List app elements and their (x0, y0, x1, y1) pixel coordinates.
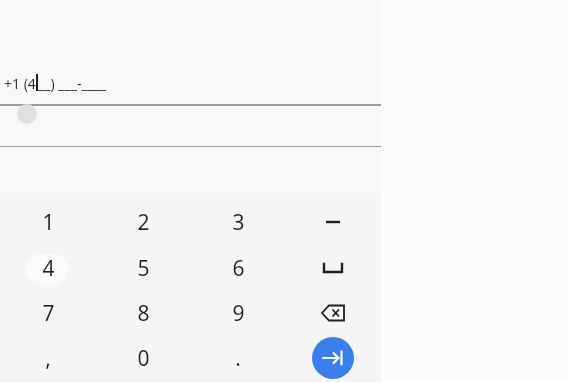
staticText: 1 (42, 208, 55, 237)
button[interactable]: 7 (1, 290, 95, 336)
staticText: 0 (137, 344, 150, 373)
button[interactable]: . (191, 335, 285, 381)
staticText: 6 (232, 254, 245, 283)
button[interactable]: 6 (191, 245, 285, 291)
staticText: 8 (137, 299, 150, 328)
button[interactable]: 9 (191, 290, 285, 336)
staticText: +1 (4 (4, 74, 36, 93)
button[interactable]: Backspace (286, 290, 380, 336)
button[interactable]: 5 (96, 245, 190, 291)
button[interactable]: 8 (96, 290, 190, 336)
button[interactable]: 4 (1, 245, 95, 291)
button[interactable]: Next (312, 337, 354, 379)
staticText: , (45, 344, 51, 373)
staticText: 5 (137, 254, 150, 283)
button[interactable]: , (1, 335, 95, 381)
button[interactable]: +1 (4 (0, 65, 381, 105)
staticText: 2 (137, 208, 150, 237)
button[interactable]: 0 (96, 335, 190, 381)
staticText: 4 (42, 254, 55, 283)
staticText: __) ___-____ (38, 74, 107, 93)
staticText: 9 (232, 299, 245, 328)
button[interactable]: Space (286, 245, 380, 291)
button[interactable]: 3 (191, 199, 285, 245)
staticText: . (235, 344, 241, 373)
button[interactable]: 1 (1, 199, 95, 245)
button[interactable]: 2 (96, 199, 190, 245)
staticText: 3 (232, 208, 245, 237)
staticText: 7 (42, 299, 55, 328)
button[interactable]: Dash (286, 199, 380, 245)
